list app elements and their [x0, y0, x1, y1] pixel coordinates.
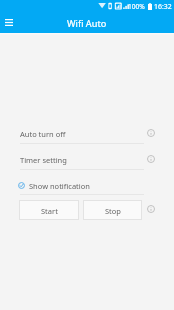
staticText: 16:32 [154, 2, 172, 11]
button[interactable]: Stop [83, 200, 142, 220]
button[interactable]: Timer setting [0, 148, 174, 169]
button[interactable]: Info [142, 200, 160, 218]
button[interactable]: Auto turn off [0, 122, 174, 143]
button[interactable]: Menu [0, 12, 17, 33]
staticText: Timer setting [20, 155, 67, 165]
button[interactable]: Start [19, 200, 79, 220]
staticText: 100% [128, 2, 145, 11]
button[interactable]: Info [142, 124, 160, 142]
staticText: Auto turn off [20, 129, 66, 139]
staticText: Show notification [29, 181, 90, 191]
staticText: Wifi Auto [67, 17, 107, 30]
staticText: Stop [105, 206, 121, 216]
button[interactable]: Info [142, 150, 160, 168]
staticText: Start [41, 206, 58, 216]
button[interactable]: Show notification [18, 180, 96, 190]
